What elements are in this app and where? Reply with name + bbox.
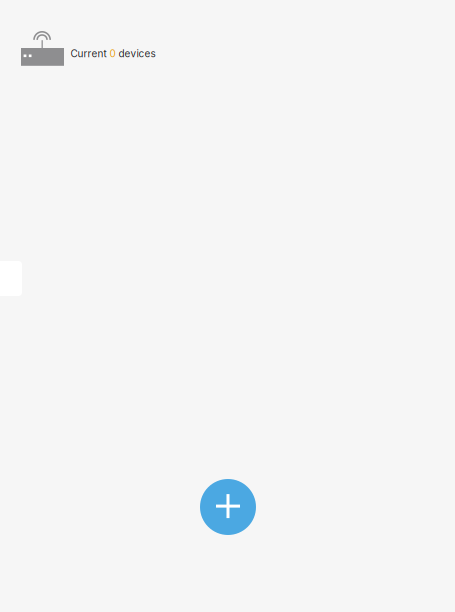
staticText: 0 [109, 48, 115, 60]
staticText: devices [115, 48, 155, 60]
staticText: Current [70, 48, 109, 60]
button[interactable]: Add device [200, 479, 256, 535]
